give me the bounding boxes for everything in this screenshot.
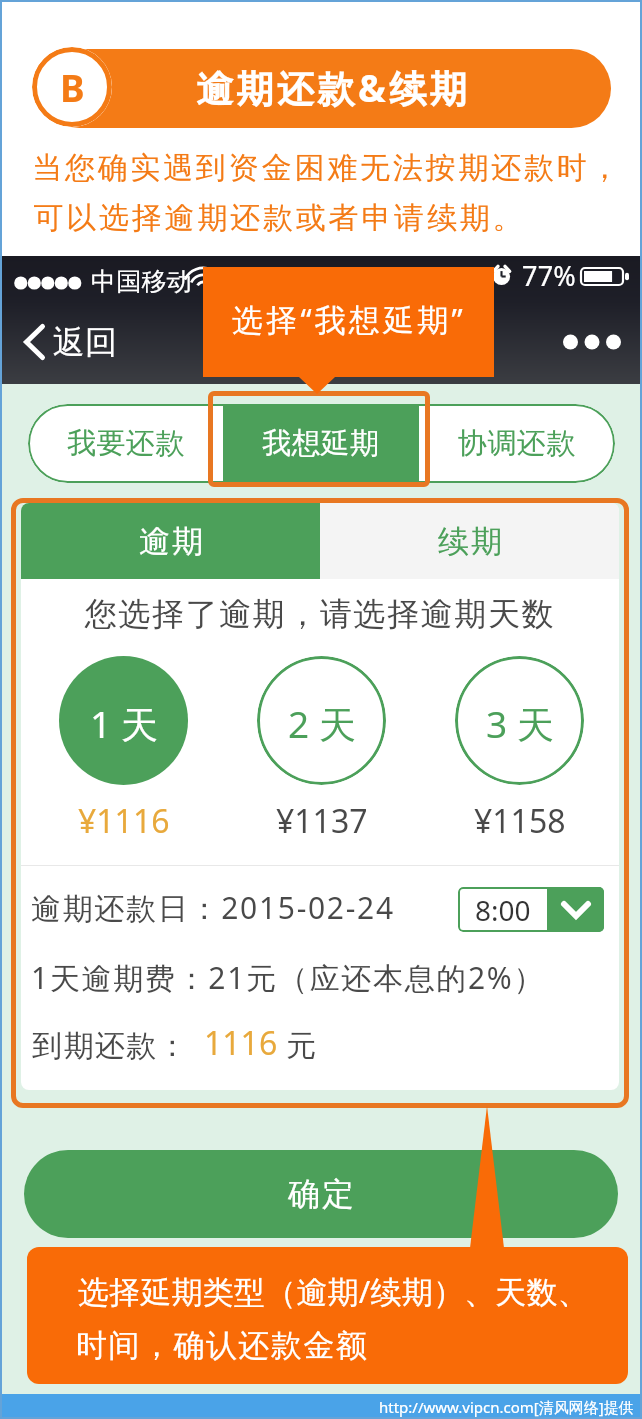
staticText: http://www.vipcn.com[清风网络]提供 [379,1397,634,1417]
button[interactable]: 2 天 [257,656,386,785]
button[interactable]: 8:00 [458,887,604,932]
button[interactable]: 确定 [24,1150,618,1238]
button[interactable]: 我要还款 [28,404,223,483]
button[interactable]: More options [556,300,628,384]
staticText: 元 [286,1027,316,1065]
staticText: 3 天 [486,698,554,749]
staticText: 逾期还款&续期 [196,62,471,113]
staticText: 1116 [204,1021,278,1065]
staticText: 时间，确认还款金额 [76,1326,369,1365]
staticText: 1天逾期费：21元（应还本息的2%） [31,957,546,998]
staticText: 可以选择逾期还款或者申请续期。 [32,199,524,237]
staticText: 77% [522,257,576,294]
button[interactable]: 逾期 [21,503,320,579]
staticText: 2 天 [288,698,356,749]
staticText: 1 天 [90,698,158,749]
staticText: 8:00 [475,891,531,929]
staticText: 我要还款 [67,425,185,462]
staticText: 确定 [287,1174,355,1214]
button[interactable]: 我想延期 [223,404,419,483]
staticText: ¥1158 [474,799,566,843]
staticText: 协调还款 [458,425,576,462]
button[interactable]: 1 天 [59,656,188,785]
staticText: 逾期 [138,522,204,561]
staticText: 续期 [437,522,503,561]
button[interactable]: 3 天 [455,656,584,785]
button[interactable]: 协调还款 [419,404,615,483]
staticText: ¥1137 [276,799,368,843]
staticText: 当您确实遇到资金困难无法按期还款时， [32,149,623,187]
staticText: 到期还款： [32,1027,188,1065]
staticText: 选择“我想延期” [232,298,466,340]
staticText: B [60,62,85,112]
button[interactable]: 续期 [320,503,619,579]
staticText: 您选择了逾期，请选择逾期天数 [21,594,619,634]
staticText: 逾期还款日：2015-02-24 [31,887,395,928]
button[interactable]: 返回 [24,300,117,384]
staticText: 中国移动 [91,266,192,297]
staticText: 选择延期类型（逾期/续期）、天数、 [78,1270,589,1312]
staticText: 返回 [53,322,117,362]
staticText: 我想延期 [262,425,380,462]
staticText: ¥1116 [78,799,170,843]
